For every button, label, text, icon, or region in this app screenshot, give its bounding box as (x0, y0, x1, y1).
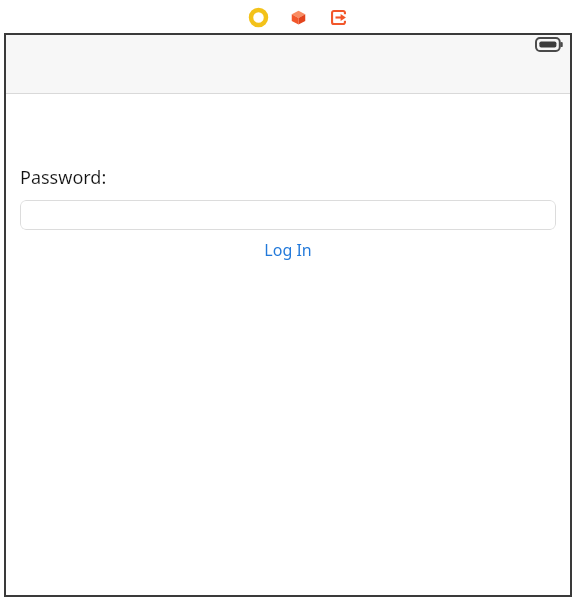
button[interactable]: Password field (20, 200, 556, 230)
button[interactable]: Package (287, 6, 309, 28)
other: Battery (536, 38, 563, 51)
staticText: Log In (264, 239, 312, 261)
button[interactable]: Export (327, 6, 349, 28)
button[interactable]: Record (247, 6, 269, 28)
staticText: Password: (20, 165, 107, 190)
button[interactable]: Log In (20, 237, 556, 263)
